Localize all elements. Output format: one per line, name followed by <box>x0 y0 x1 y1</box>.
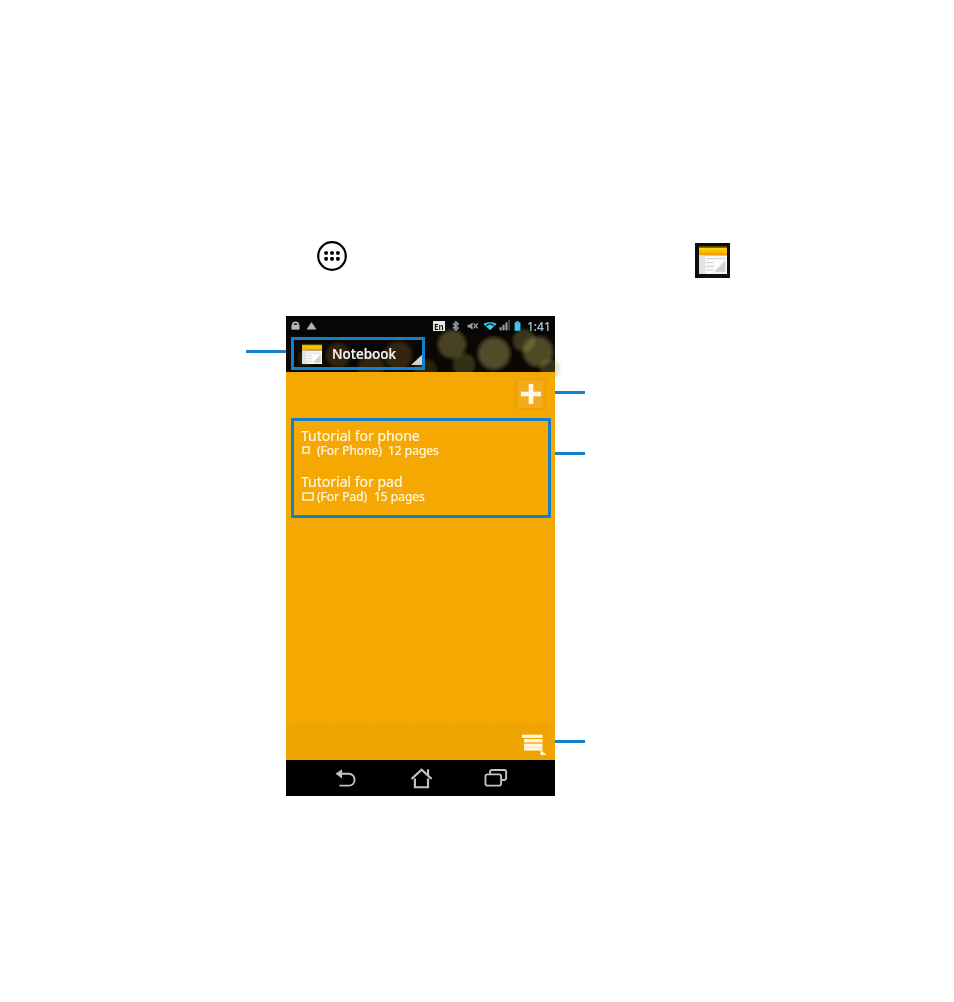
button[interactable]: Menu <box>522 734 547 755</box>
button[interactable]: Tutorial for pad <box>286 470 555 516</box>
button[interactable]: Add note <box>515 378 546 410</box>
button[interactable]: Recents <box>474 760 518 796</box>
button[interactable]: Tutorial for phone <box>286 424 555 470</box>
staticText: 15 pages <box>374 488 425 504</box>
staticText: Tutorial for phone <box>301 426 420 445</box>
staticText: 12 pages <box>388 442 439 458</box>
staticText: (For Pad) <box>317 488 368 504</box>
button[interactable]: Notebook app <box>695 243 730 278</box>
button[interactable]: Notebook <box>286 335 555 372</box>
button[interactable]: All apps <box>317 241 347 271</box>
button[interactable]: Back <box>324 760 368 796</box>
staticText: Notebook <box>332 345 397 363</box>
button[interactable]: Home <box>400 760 444 796</box>
staticText: 1:41 <box>527 318 551 334</box>
staticText: En <box>434 321 444 331</box>
staticText: Tutorial for pad <box>301 472 403 491</box>
staticText: (For Phone) <box>317 442 382 458</box>
